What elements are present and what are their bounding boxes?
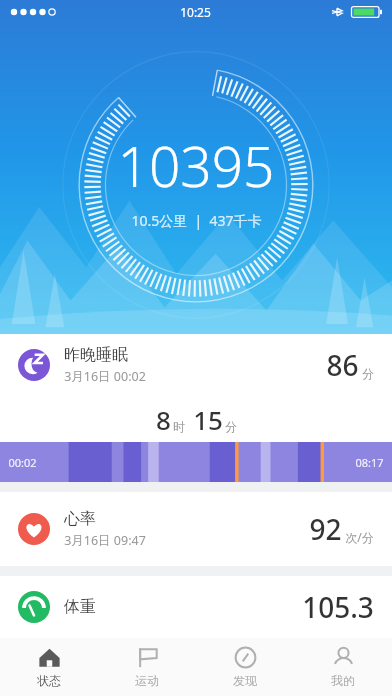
button[interactable]: 昨晚睡眠 (0, 334, 392, 482)
staticText: 次/分 (345, 529, 374, 545)
staticText: 运动 (135, 673, 159, 688)
button[interactable]: 发现 (196, 638, 294, 696)
button[interactable]: 体重 (0, 576, 392, 638)
staticText: 10.5公里 | 437千卡 (131, 211, 262, 230)
staticText: 10395 (117, 128, 275, 203)
staticText: 08:17 (355, 455, 384, 470)
staticText: 分 (225, 419, 237, 434)
staticText: 92 (309, 510, 342, 548)
button[interactable]: 运动 (98, 638, 196, 696)
staticText: 15 (193, 402, 223, 437)
staticText: 3月16日 00:02 (64, 368, 146, 385)
staticText: 心率 (64, 509, 96, 529)
button[interactable]: 心率 (0, 492, 392, 566)
button[interactable]: 状态 (0, 638, 98, 696)
staticText: 我的 (331, 673, 355, 688)
staticText: 00:02 (8, 455, 37, 470)
staticText: 昨晚睡眠 (64, 345, 128, 365)
staticText: 分 (362, 366, 374, 381)
staticText: 状态 (37, 673, 61, 688)
button[interactable]: 我的 (294, 638, 392, 696)
staticText: 105.3 (302, 588, 374, 626)
staticText: 3月16日 09:47 (64, 532, 146, 549)
staticText: 体重 (64, 597, 96, 617)
staticText: 发现 (233, 673, 257, 688)
staticText: 10:25 (180, 4, 211, 20)
staticText: 86 (326, 346, 359, 384)
staticText: 时 (173, 419, 185, 434)
staticText: 8 (156, 402, 171, 437)
